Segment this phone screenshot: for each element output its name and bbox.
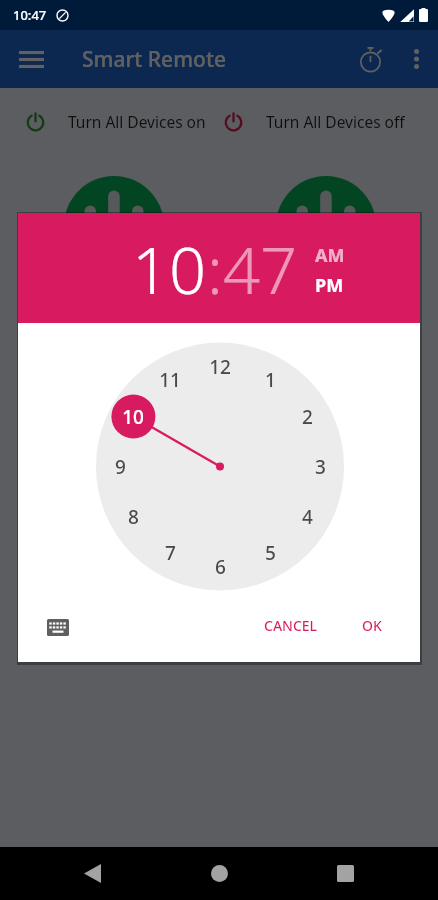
staticText: 10 [132, 225, 207, 314]
button[interactable]: 47 [223, 225, 298, 314]
button[interactable]: Home [197, 851, 241, 895]
button[interactable]: PM [315, 273, 344, 298]
staticText: 6 [215, 554, 226, 580]
button[interactable]: 12 [199, 346, 241, 388]
staticText: AM [315, 243, 345, 268]
staticText: : [207, 225, 223, 314]
staticText: Smart Remote [82, 45, 226, 74]
staticText: 10 [122, 404, 144, 430]
button[interactable]: 6 [199, 546, 241, 588]
button[interactable]: Recent apps [323, 851, 367, 895]
staticText: PM [315, 273, 344, 298]
button[interactable]: 7 [149, 532, 191, 574]
staticText: 47 [223, 225, 298, 314]
button[interactable]: Timer [348, 37, 392, 81]
staticText: 8 [128, 504, 139, 530]
staticText: 7 [165, 540, 176, 566]
staticText: CANCEL [264, 616, 318, 635]
button[interactable]: Turn All Devices off [219, 88, 438, 142]
button[interactable]: 1 [249, 359, 291, 401]
staticText: Turn All Devices off [266, 111, 405, 132]
button[interactable]: Back [70, 851, 114, 895]
staticText: 4 [302, 504, 313, 530]
staticText: 1 [265, 367, 276, 393]
staticText: 3 [315, 454, 326, 480]
button[interactable]: 10 [132, 225, 207, 314]
button[interactable]: More options [394, 37, 438, 81]
button[interactable]: CANCEL [252, 606, 330, 645]
button[interactable]: 8 [112, 496, 154, 538]
staticText: 5 [265, 540, 276, 566]
button[interactable]: 9 [99, 446, 141, 488]
button[interactable]: Navigation menu [9, 37, 53, 81]
button[interactable]: 10 [112, 396, 154, 438]
staticText: 11 [159, 367, 181, 393]
button[interactable]: 3 [299, 446, 341, 488]
button[interactable]: 11 [149, 359, 191, 401]
staticText: Turn All Devices on [68, 111, 206, 132]
button[interactable]: Turn All Devices on [0, 88, 219, 142]
button[interactable]: 2 [286, 396, 328, 438]
button[interactable]: OK [350, 606, 394, 645]
button[interactable]: 4 [286, 496, 328, 538]
staticText: 10:47 [13, 6, 47, 24]
staticText: OK [362, 616, 382, 635]
staticText: 9 [115, 454, 126, 480]
button[interactable]: 5 [249, 532, 291, 574]
button[interactable]: AM [315, 243, 345, 268]
button[interactable]: Switch to text input [37, 606, 79, 648]
staticText: 2 [302, 404, 313, 430]
staticText: 12 [209, 354, 231, 380]
